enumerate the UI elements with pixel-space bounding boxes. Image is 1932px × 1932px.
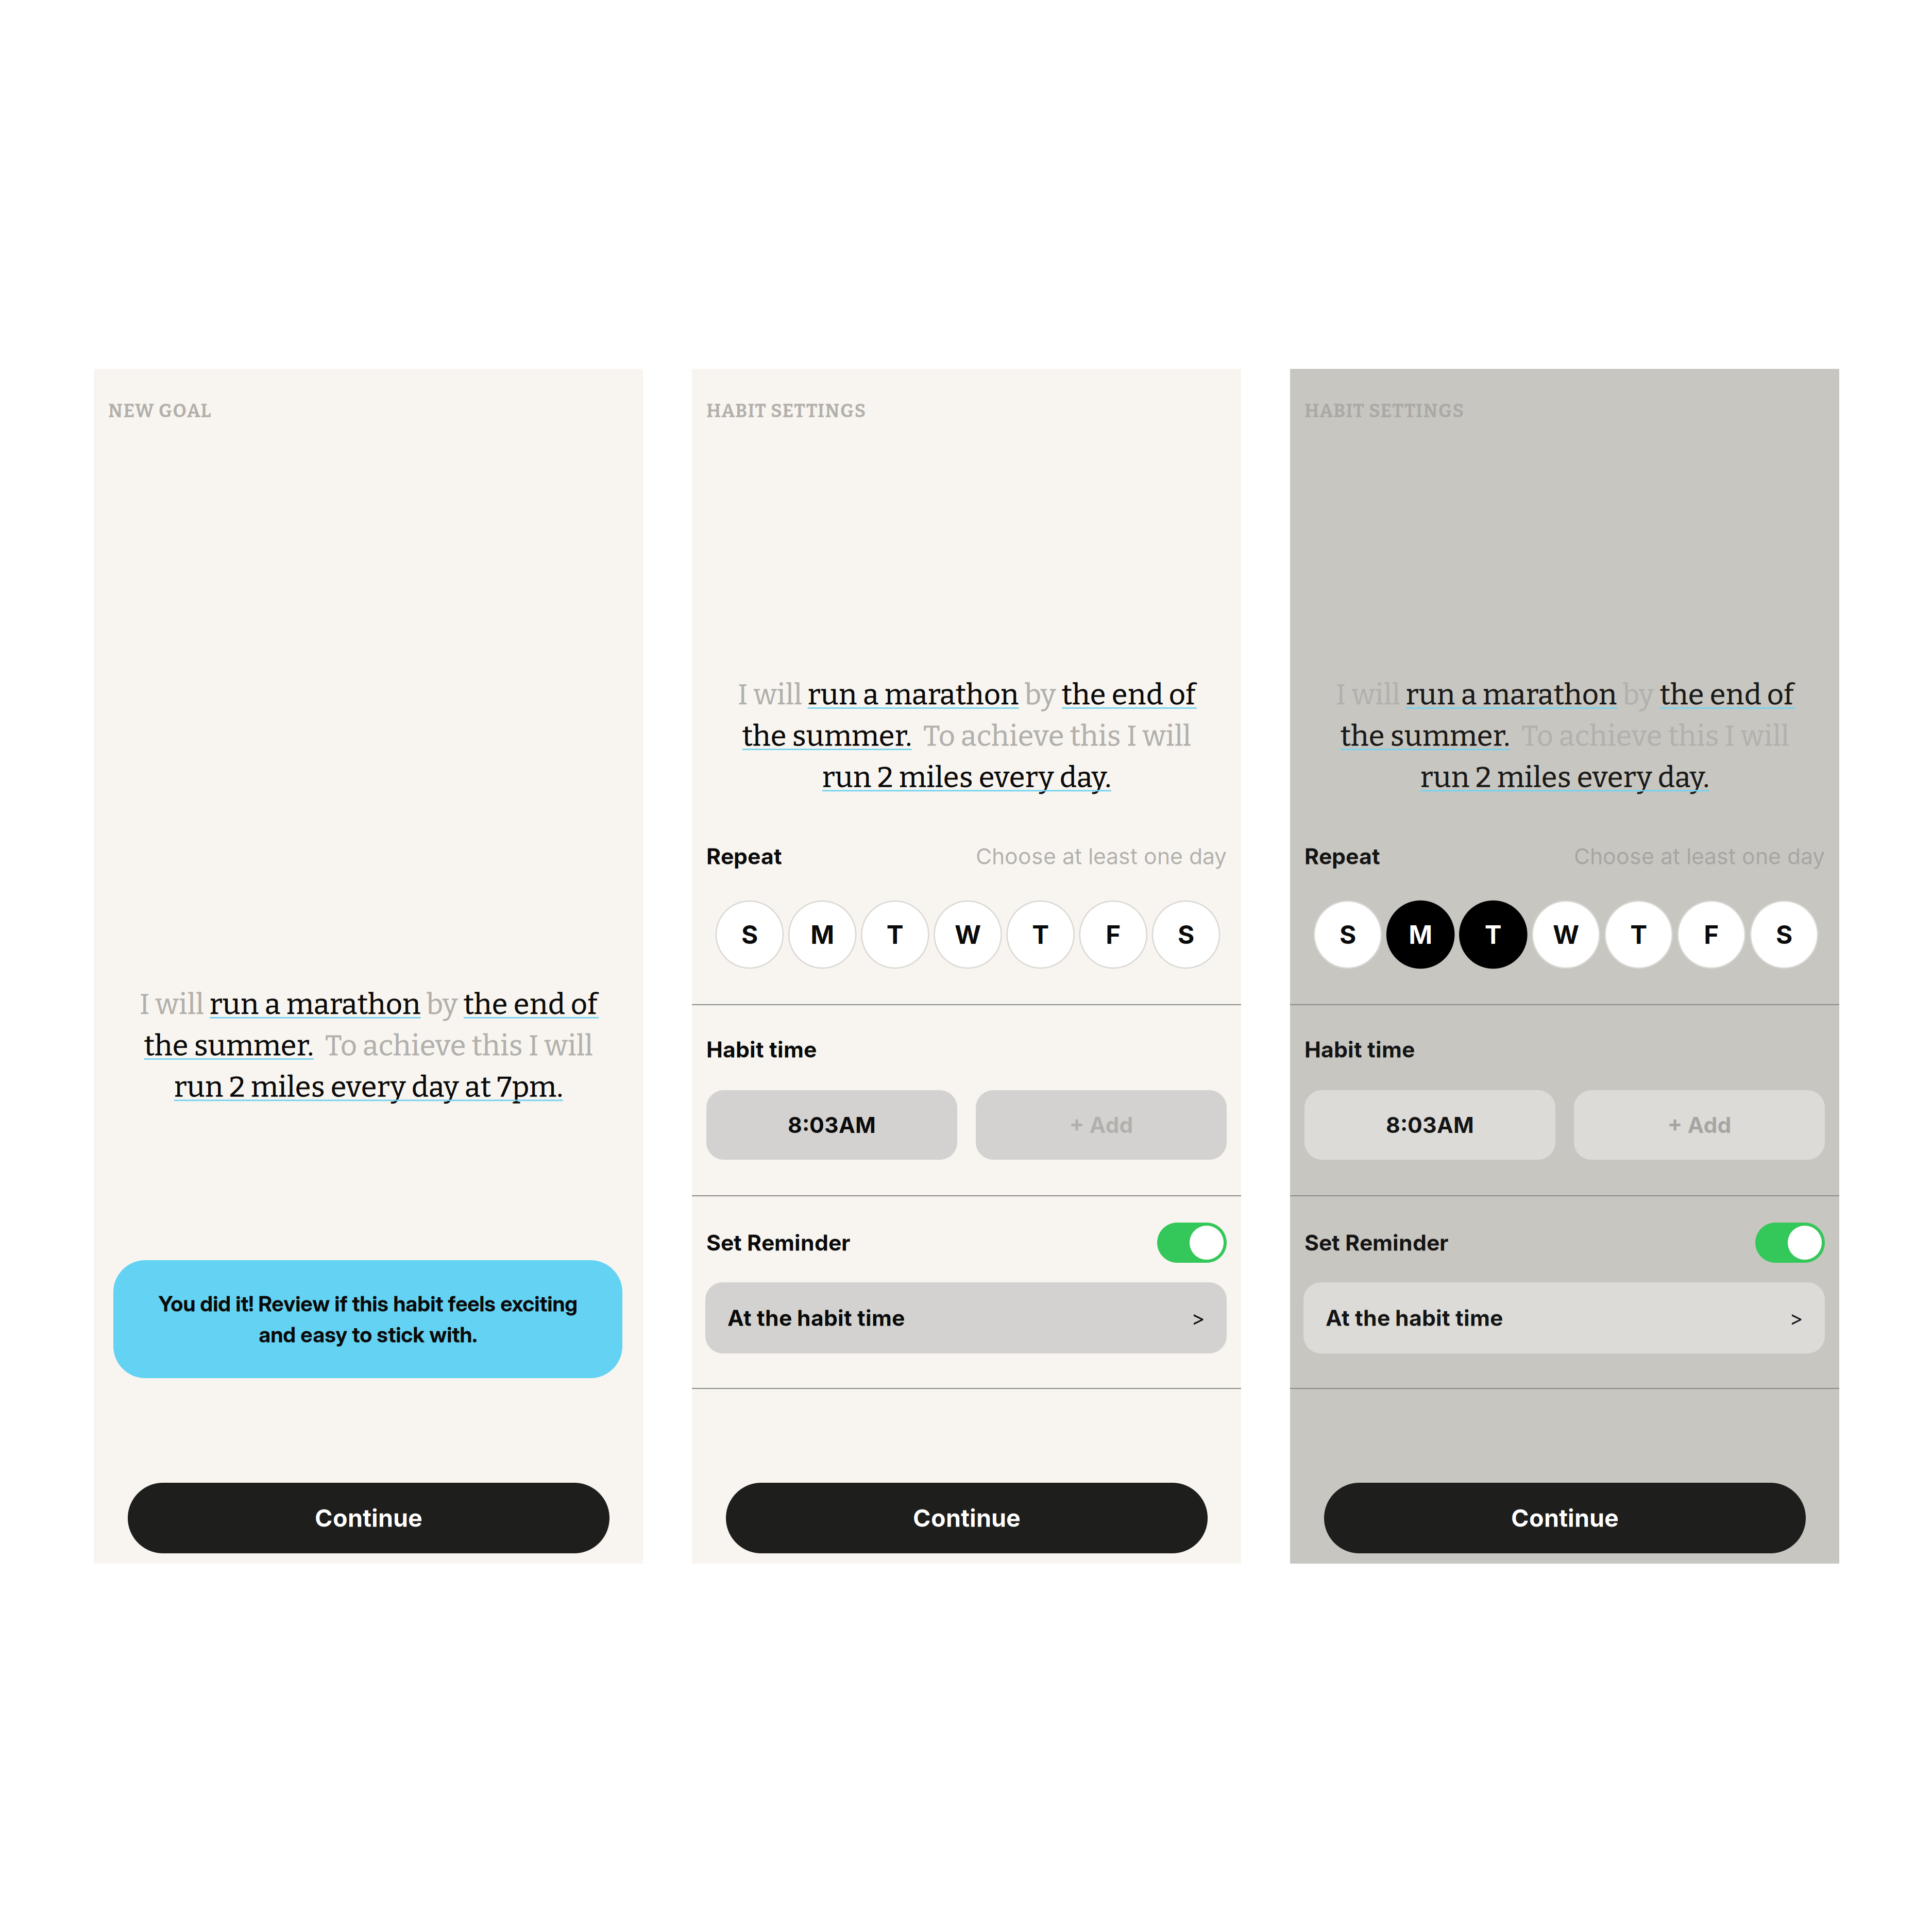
button[interactable]: Continue <box>726 1483 1208 1553</box>
staticText: F <box>1106 919 1121 950</box>
staticText: Habit time <box>1304 1036 1415 1063</box>
staticText: Set Reminder <box>1304 1229 1448 1256</box>
staticText: I will run a marathon by the end of the … <box>1336 677 1794 795</box>
staticText: At the habit time <box>1326 1305 1503 1331</box>
staticText: W <box>955 919 981 950</box>
button[interactable]: + Add <box>1574 1090 1825 1160</box>
staticText: I will run a marathon by the end of the … <box>139 987 597 1104</box>
staticText: Repeat <box>1304 843 1380 870</box>
button[interactable]: F <box>1678 901 1745 968</box>
button[interactable]: T <box>1007 901 1074 968</box>
button[interactable]: S <box>1153 901 1219 968</box>
staticText: HABIT SETTINGS <box>706 400 866 422</box>
staticText: Choose at least one day <box>976 843 1227 870</box>
button[interactable]: T <box>1605 901 1672 968</box>
button[interactable]: S <box>716 901 783 968</box>
staticText: Continue <box>315 1504 422 1533</box>
button[interactable]: M <box>789 901 856 968</box>
staticText: 8:03AM <box>1386 1112 1474 1138</box>
staticText: Habit time <box>706 1036 817 1063</box>
button[interactable]: Set Reminder <box>1755 1223 1825 1263</box>
button[interactable]: Continue <box>128 1483 609 1553</box>
staticText: S <box>1178 919 1194 950</box>
button[interactable]: S <box>1314 901 1381 968</box>
staticText: Repeat <box>706 843 782 870</box>
staticText: Choose at least one day <box>1574 843 1825 870</box>
staticText: S <box>741 919 758 950</box>
staticText: T <box>1485 919 1502 950</box>
staticText: T <box>1630 919 1647 950</box>
staticText: > <box>1192 1305 1205 1330</box>
button[interactable]: You did it! Review if this habit feels e… <box>113 1260 622 1378</box>
staticText: At the habit time <box>727 1305 905 1331</box>
staticText: + Add <box>1069 1112 1133 1138</box>
button[interactable]: T <box>1460 901 1527 968</box>
button[interactable]: Set Reminder <box>1157 1223 1227 1263</box>
button[interactable]: At the habit time <box>705 1282 1227 1353</box>
button[interactable]: W <box>1532 901 1599 968</box>
button[interactable]: F <box>1080 901 1147 968</box>
staticText: + Add <box>1667 1112 1731 1138</box>
staticText: M <box>811 919 834 950</box>
staticText: W <box>1553 919 1579 950</box>
button[interactable]: T <box>862 901 929 968</box>
staticText: M <box>1409 919 1432 950</box>
staticText: Continue <box>1511 1504 1619 1533</box>
button[interactable]: M <box>1387 901 1454 968</box>
staticText: HABIT SETTINGS <box>1304 400 1464 422</box>
staticText: > <box>1790 1305 1803 1330</box>
button[interactable]: Continue <box>1324 1483 1806 1553</box>
button[interactable]: At the habit time <box>1303 1282 1825 1353</box>
staticText: You did it! Review if this habit feels e… <box>158 1291 578 1348</box>
staticText: 8:03AM <box>788 1112 876 1138</box>
button[interactable]: W <box>934 901 1001 968</box>
staticText: Continue <box>913 1504 1021 1533</box>
staticText: I will run a marathon by the end of the … <box>738 677 1196 795</box>
staticText: S <box>1340 919 1356 950</box>
staticText: F <box>1704 919 1719 950</box>
staticText: NEW GOAL <box>108 400 211 422</box>
staticText: T <box>1032 919 1049 950</box>
staticText: T <box>887 919 904 950</box>
staticText: Set Reminder <box>706 1229 850 1256</box>
staticText: S <box>1776 919 1792 950</box>
button[interactable]: S <box>1751 901 1818 968</box>
button[interactable]: 8:03AM <box>706 1090 957 1160</box>
button[interactable]: 8:03AM <box>1304 1090 1555 1160</box>
button[interactable]: + Add <box>976 1090 1227 1160</box>
